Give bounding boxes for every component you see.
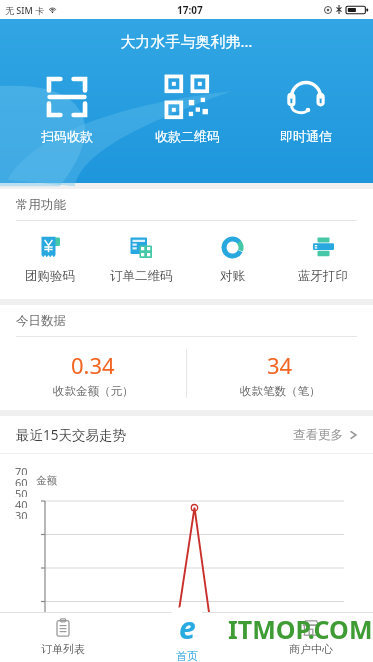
staticText: 收款笔数（笔）	[240, 384, 321, 398]
staticText: 40	[15, 497, 28, 508]
staticText: 查看更多	[293, 427, 343, 443]
staticText: 金额	[36, 474, 57, 487]
staticText: 最近15天交易走势	[16, 426, 126, 444]
staticText: 订单列表	[41, 642, 85, 656]
staticText: 商户中心	[289, 642, 333, 656]
staticText: 扫码收款	[41, 128, 93, 144]
staticText: 订单二维码	[110, 268, 173, 284]
staticText: 60	[15, 475, 28, 486]
staticText: 首页	[176, 649, 198, 662]
button[interactable]: 34	[187, 337, 373, 410]
staticText: 无 SIM 卡	[5, 4, 45, 16]
button[interactable]: 0.34	[0, 337, 186, 410]
button[interactable]: 首页	[132, 606, 242, 662]
staticText: 17:07	[177, 3, 203, 17]
button[interactable]: 对账	[191, 235, 273, 284]
staticText: 0.34	[71, 350, 115, 380]
staticText: 34	[267, 350, 293, 380]
staticText: ITMOP.COM	[228, 612, 373, 646]
staticText: 收款二维码	[155, 128, 220, 144]
button[interactable]: 商户中心	[249, 612, 373, 662]
staticText: 常用功能	[16, 197, 66, 213]
button[interactable]: 订单二维码	[100, 235, 182, 284]
button[interactable]: 即时通信	[254, 73, 358, 146]
staticText: 50	[15, 486, 28, 497]
staticText: 今日数据	[16, 313, 66, 329]
staticText: 蓝牙打印	[298, 268, 348, 284]
staticText: 即时通信	[280, 128, 332, 144]
button[interactable]: 扫码收款	[15, 73, 119, 146]
staticText: 70	[15, 464, 28, 475]
staticText: e	[179, 607, 196, 648]
button[interactable]: 蓝牙打印	[282, 235, 364, 284]
staticText: 团购验码	[25, 268, 75, 284]
staticText: 30	[15, 508, 28, 519]
staticText: 收款金额（元）	[53, 384, 134, 398]
button[interactable]: 收款二维码	[135, 73, 239, 146]
button[interactable]: 订单列表	[0, 612, 125, 662]
button[interactable]: 团购验码	[9, 235, 91, 284]
button[interactable]: 最近15天交易走势	[0, 416, 373, 453]
staticText: 对账	[220, 268, 245, 284]
staticText: 大力水手与奥利弗…	[0, 31, 373, 51]
